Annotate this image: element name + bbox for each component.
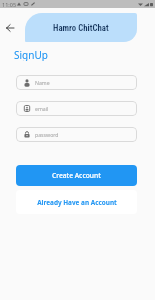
button[interactable]: Already Have an Account	[16, 190, 137, 214]
button[interactable]: Name	[16, 75, 137, 90]
button[interactable]: Create Account	[16, 165, 137, 186]
staticText: email	[35, 105, 49, 112]
staticText: Name	[35, 79, 50, 86]
button[interactable]: password	[16, 127, 137, 142]
staticText: Already Have an Account	[37, 198, 117, 207]
staticText: 11:05	[2, 1, 17, 8]
staticText: SignUp	[14, 48, 48, 61]
button[interactable]: email	[16, 101, 137, 116]
staticText: Create Account	[52, 171, 101, 180]
staticText: Hamro ChitChat	[53, 23, 109, 33]
button[interactable]: Back	[3, 21, 16, 34]
staticText: password	[35, 131, 59, 138]
